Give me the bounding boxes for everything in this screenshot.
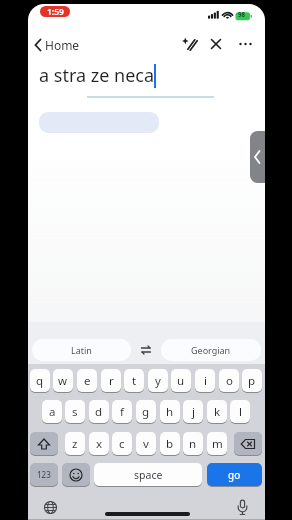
staticText: d xyxy=(95,404,103,420)
staticText: Georgian xyxy=(191,344,231,356)
staticText: space xyxy=(134,468,163,482)
button[interactable]: s xyxy=(65,400,85,423)
button[interactable]: v xyxy=(136,432,156,455)
staticText: q xyxy=(36,373,44,389)
button[interactable]: o xyxy=(219,369,239,392)
staticText: 98 xyxy=(238,10,246,18)
staticText: i xyxy=(204,373,207,389)
staticText: p xyxy=(248,373,256,389)
button[interactable] xyxy=(139,343,153,357)
button[interactable]: space xyxy=(94,463,202,486)
button[interactable]: c xyxy=(112,432,132,455)
staticText: a stra ze neca xyxy=(39,63,155,88)
staticText: r xyxy=(109,373,114,389)
button[interactable]: e xyxy=(77,369,97,392)
staticText: y xyxy=(155,373,161,389)
button[interactable] xyxy=(39,112,159,133)
staticText: b xyxy=(166,436,174,452)
staticText: z xyxy=(72,436,78,452)
staticText: w xyxy=(58,373,68,389)
button[interactable]: p xyxy=(242,369,262,392)
staticText: s xyxy=(72,404,78,420)
staticText: j xyxy=(192,404,195,420)
staticText: m xyxy=(212,436,223,452)
button[interactable] xyxy=(250,131,265,183)
button[interactable]: Home xyxy=(31,35,101,55)
button[interactable] xyxy=(43,500,58,515)
button[interactable]: m xyxy=(207,432,227,455)
button[interactable] xyxy=(208,36,224,52)
button[interactable]: f xyxy=(112,400,132,423)
staticText: t xyxy=(132,373,137,389)
staticText: go xyxy=(228,468,241,482)
button[interactable]: k xyxy=(207,400,227,423)
button[interactable]: i xyxy=(195,369,215,392)
staticText: n xyxy=(189,436,197,452)
button[interactable]: q xyxy=(30,369,50,392)
button[interactable] xyxy=(181,35,199,53)
button[interactable]: w xyxy=(53,369,73,392)
staticText: h xyxy=(166,404,174,420)
button[interactable]: y xyxy=(148,369,168,392)
staticText: e xyxy=(84,373,91,389)
button[interactable]: 123 xyxy=(30,463,58,486)
staticText: 1:59 xyxy=(47,6,64,17)
button[interactable]: Latin xyxy=(32,339,131,361)
staticText: Latin xyxy=(71,344,92,356)
button[interactable]: g xyxy=(136,400,156,423)
staticText: c xyxy=(119,436,125,452)
button[interactable]: go xyxy=(207,463,262,486)
button[interactable]: z xyxy=(65,432,85,455)
button[interactable]: u xyxy=(171,369,191,392)
button[interactable]: 1:59 xyxy=(40,6,70,17)
staticText: f xyxy=(120,404,124,420)
staticText: o xyxy=(226,373,233,389)
button[interactable] xyxy=(237,36,254,52)
button[interactable] xyxy=(235,499,250,516)
staticText: k xyxy=(214,404,221,420)
staticText: Home xyxy=(45,37,80,53)
staticText: l xyxy=(239,404,242,420)
staticText: a xyxy=(49,404,56,420)
button[interactable] xyxy=(234,432,262,455)
button[interactable]: j xyxy=(183,400,203,423)
staticText: 123 xyxy=(37,469,51,480)
button[interactable] xyxy=(62,463,90,486)
button[interactable]: b xyxy=(160,432,180,455)
button[interactable]: x xyxy=(89,432,109,455)
button[interactable]: Georgian xyxy=(161,339,261,361)
staticText: v xyxy=(143,436,149,452)
button[interactable]: d xyxy=(89,400,109,423)
button[interactable]: t xyxy=(124,369,144,392)
staticText: u xyxy=(177,373,185,389)
button[interactable]: l xyxy=(230,400,250,423)
button[interactable]: r xyxy=(101,369,121,392)
button[interactable]: a xyxy=(42,400,62,423)
button[interactable]: n xyxy=(183,432,203,455)
staticText: x xyxy=(96,436,103,452)
button[interactable] xyxy=(30,432,58,455)
button[interactable]: h xyxy=(160,400,180,423)
staticText: g xyxy=(142,404,150,420)
